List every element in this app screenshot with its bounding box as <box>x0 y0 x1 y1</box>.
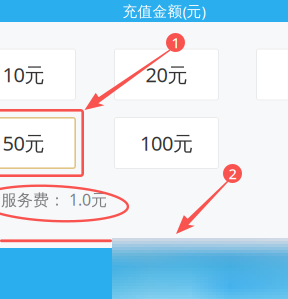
staticText: 10元 <box>2 61 44 88</box>
button[interactable]: 20元 <box>114 48 219 100</box>
staticText: 20元 <box>145 61 187 88</box>
button[interactable]: 100元 <box>114 117 219 169</box>
button[interactable]: 50元 <box>0 117 76 169</box>
button[interactable]: 30元 <box>256 48 288 100</box>
button[interactable]: 10元 <box>0 48 76 100</box>
staticText: 100元 <box>140 130 193 156</box>
staticText: 50元 <box>2 130 44 156</box>
staticText: 充值金额(元) <box>122 1 205 21</box>
staticText: 1 <box>171 33 179 52</box>
staticText: 2 <box>228 164 236 183</box>
staticText: 含服务费： 1.0元 <box>0 189 107 210</box>
